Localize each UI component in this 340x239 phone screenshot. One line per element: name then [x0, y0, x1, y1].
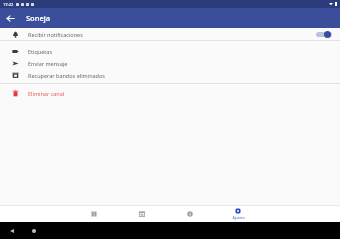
staticText: Recuperar bandos eliminados: [28, 72, 105, 79]
staticText: Ajustes: [232, 215, 245, 220]
button[interactable]: Navigation tab: [118, 205, 166, 222]
button[interactable]: Recuperar bandos eliminados: [0, 69, 340, 81]
button[interactable]: Enviar mensaje: [0, 57, 340, 69]
button[interactable]: Navigation tab: [166, 205, 214, 222]
staticText: Recibir notificaciones: [28, 31, 83, 38]
button[interactable]: Etiquetas: [0, 45, 340, 57]
button[interactable]: Home: [30, 227, 38, 235]
staticText: Enviar mensaje: [28, 60, 68, 67]
button[interactable]: Back: [0, 8, 20, 28]
staticText: Eliminar canal: [28, 90, 65, 97]
button[interactable]: Recibir notificaciones: [0, 28, 340, 40]
staticText: 17:22: [3, 2, 14, 7]
button[interactable]: Toggle notifications: [316, 30, 332, 39]
staticText: Soneja: [26, 13, 51, 23]
staticText: Etiquetas: [28, 48, 53, 55]
button[interactable]: Ajustes: [214, 205, 262, 222]
button[interactable]: Eliminar canal: [0, 87, 340, 99]
button[interactable]: Navigation tab: [70, 205, 118, 222]
button[interactable]: Back: [8, 227, 16, 235]
